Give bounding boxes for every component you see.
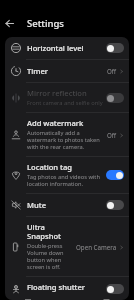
button[interactable]: Toggle (106, 43, 124, 53)
staticText: Horizontal level (27, 43, 84, 53)
staticText: Ultra Snapshot (27, 222, 73, 241)
staticText: Timer (27, 66, 49, 76)
button[interactable]: Toggle (106, 284, 124, 294)
staticText: Front camera and selfie only (27, 99, 103, 107)
button[interactable]: Ultra Snapshot (5, 217, 129, 276)
button[interactable]: Floating shutter (5, 277, 129, 300)
button[interactable]: Toggle (106, 93, 124, 103)
staticText: Tag photos and videos with location info… (27, 173, 103, 188)
staticText: Mute (27, 200, 46, 210)
button[interactable]: Timer (5, 60, 129, 82)
staticText: Add watermark (27, 118, 84, 128)
staticText: Mirror reflection (27, 88, 87, 98)
staticText: Settings (27, 17, 64, 30)
button[interactable]: Back (0, 14, 18, 32)
staticText: Double-press Volume down button when scr… (27, 242, 73, 271)
button[interactable]: Toggle (106, 200, 124, 210)
staticText: Automatically add a watermark to photos … (27, 129, 104, 151)
button[interactable]: Toggle (106, 170, 124, 180)
button[interactable]: Horizontal level (5, 37, 129, 59)
button[interactable]: Add watermark (5, 113, 129, 156)
button[interactable]: Location tag (5, 157, 129, 193)
staticText: Location tag (27, 162, 73, 172)
staticText: Off (107, 131, 117, 139)
button[interactable]: Mute (5, 194, 129, 216)
staticText: Open Camera (76, 243, 117, 251)
staticText: Off (107, 67, 117, 75)
staticText: Floating shutter (27, 282, 86, 292)
button[interactable]: Mirror reflection (5, 83, 129, 112)
